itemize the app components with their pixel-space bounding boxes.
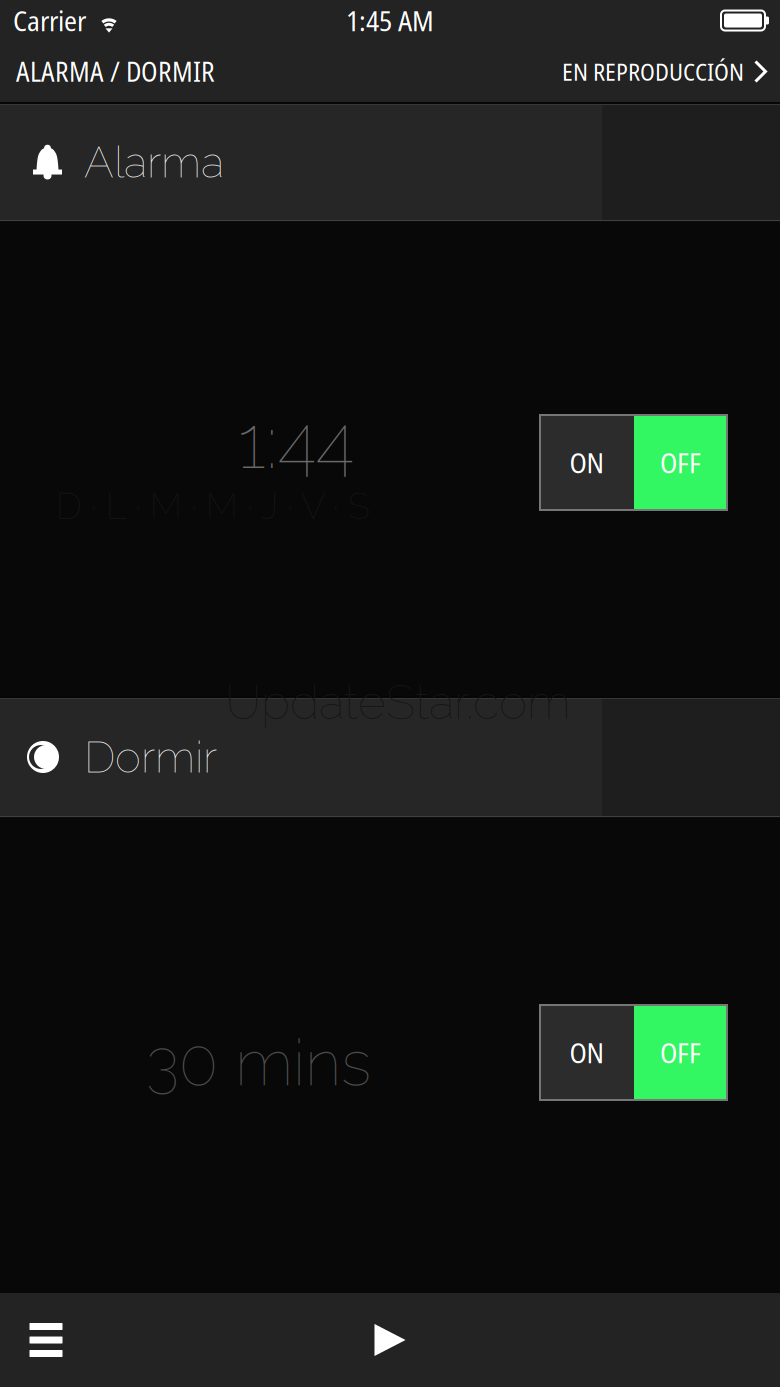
button[interactable]: ON — [540, 1005, 727, 1100]
staticText: Carrier — [13, 1, 86, 39]
staticText: 30 mins — [146, 1025, 371, 1100]
staticText: Alarma — [84, 136, 224, 188]
staticText: 1:44 — [238, 399, 354, 485]
button[interactable]: EN REPRODUCCIÓN — [548, 41, 780, 102]
staticText: OFF — [660, 443, 701, 481]
staticText: EN REPRODUCCIÓN — [562, 55, 744, 88]
button[interactable]: ALARMA / DORMIR — [0, 41, 229, 102]
staticText: Dormir — [84, 731, 217, 783]
staticText: UpdateStar.com — [225, 674, 571, 730]
button[interactable]: Menu — [0, 1293, 92, 1387]
staticText: ALARMA / DORMIR — [16, 53, 215, 90]
button[interactable]: ON — [540, 415, 727, 510]
staticText: 1:45 AM — [346, 1, 434, 39]
staticText: ON — [569, 443, 604, 481]
button[interactable]: Play — [340, 1293, 440, 1387]
staticText: OFF — [660, 1033, 701, 1071]
staticText: ON — [569, 1033, 604, 1071]
